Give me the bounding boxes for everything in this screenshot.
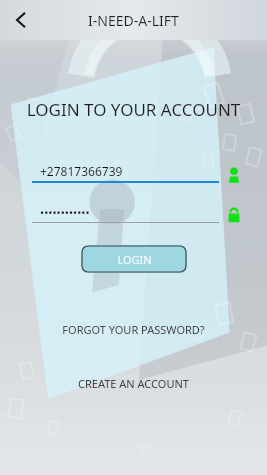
staticText: +27817366739 (40, 163, 123, 179)
staticText: FORGOT YOUR PASSWORD? (62, 322, 205, 337)
other: Password (225, 206, 243, 224)
button[interactable]: LOGIN (81, 245, 187, 273)
staticText: •••••••••••• (40, 205, 90, 220)
button[interactable]: CREATE AN ACCOUNT (70, 372, 197, 395)
button[interactable]: Back (4, 3, 38, 37)
other: Username (225, 166, 243, 184)
staticText: I-NEED-A-LIFT (88, 11, 179, 30)
staticText: LOGIN TO YOUR ACCOUNT (0, 98, 267, 121)
staticText: LOGIN (117, 252, 152, 267)
button[interactable]: •••••••••••• (32, 205, 243, 223)
button[interactable]: FORGOT YOUR PASSWORD? (54, 318, 213, 341)
staticText: CREATE AN ACCOUNT (78, 376, 189, 391)
button[interactable]: +27817366739 (32, 163, 243, 183)
